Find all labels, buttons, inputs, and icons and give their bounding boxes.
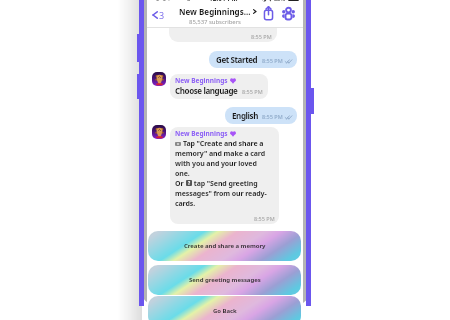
button[interactable]: Members: [281, 6, 295, 20]
button[interactable]: Channel avatar: [152, 72, 166, 86]
staticText: memory" and make a card: [175, 149, 266, 159]
button[interactable]: Share: [261, 6, 275, 20]
staticText: Create and share a memory: [184, 242, 266, 250]
staticText: Send greeting messages: [189, 276, 261, 284]
staticText: New Beginnings: [175, 129, 228, 138]
button[interactable]: Create and share a memory: [148, 231, 301, 261]
staticText: Go Back: [213, 307, 237, 315]
staticText: 8:55 PM: [262, 57, 283, 64]
staticText: ◑ ▼ 88%: [262, 0, 286, 2]
staticText: 8:55 PM: [251, 33, 272, 40]
button[interactable]: New Beginnings: [170, 127, 279, 224]
staticText: ● ● ▶ Telegram: [155, 0, 203, 2]
staticText: cards.: [175, 199, 196, 209]
button[interactable]: English: [225, 107, 297, 124]
button[interactable]: Get Started: [209, 51, 297, 68]
button[interactable]: New Beginnings: [170, 74, 268, 99]
button[interactable]: Channel avatar: [152, 125, 166, 139]
staticText: 8:55 PM: [254, 215, 275, 222]
button[interactable]: Send greeting messages: [148, 265, 301, 295]
staticText: Choose language: [175, 85, 238, 96]
staticText: Or: [175, 179, 186, 189]
button[interactable]: Go Back: [148, 296, 301, 320]
staticText: messages" from our ready-: [175, 189, 267, 199]
staticText: 3: [159, 9, 165, 21]
staticText: New Beginnings...: [179, 6, 251, 17]
staticText: English: [232, 110, 258, 121]
staticText: 8:55 PM: [262, 113, 283, 120]
staticText: ?: [188, 180, 191, 186]
staticText: tap "Send greeting: [192, 179, 258, 189]
button[interactable]: Back: [149, 3, 167, 26]
staticText: with you and your loved: [175, 159, 257, 169]
staticText: Get Started: [216, 54, 258, 65]
staticText: 85,537 subscribers: [189, 18, 241, 26]
staticText: 12:01 PM: [209, 0, 238, 2]
staticText: Tap "Create and share a: [183, 139, 264, 149]
staticText: one.: [175, 169, 190, 179]
staticText: New Beginnings: [175, 76, 228, 85]
staticText: 8:55 PM: [242, 88, 263, 95]
